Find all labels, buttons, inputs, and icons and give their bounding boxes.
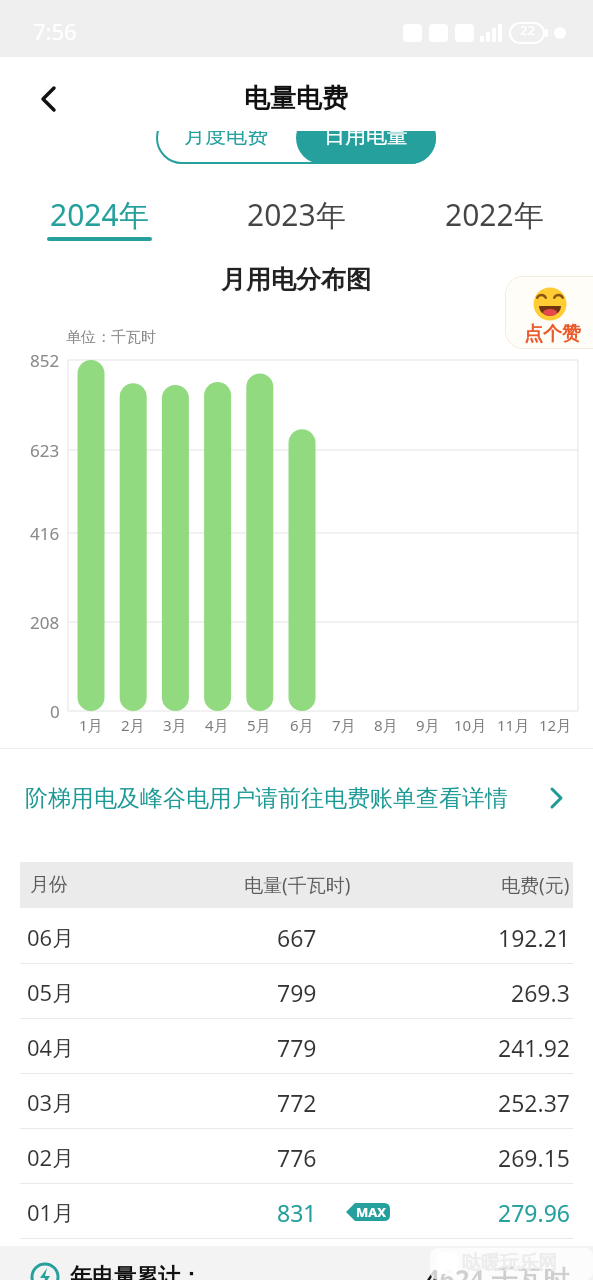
staticText: 单位：千瓦时	[66, 328, 156, 347]
staticText: 8月	[374, 715, 398, 735]
staticText: 06月	[27, 922, 75, 950]
staticText: 831	[277, 1197, 317, 1225]
staticText: 279.96	[498, 1197, 570, 1225]
staticText: 7:56	[33, 16, 77, 44]
staticText: 9月	[416, 715, 440, 735]
staticText: 667	[277, 922, 317, 950]
staticText: 2022年	[445, 194, 544, 235]
staticText: 10月	[454, 715, 487, 735]
button[interactable]	[505, 276, 593, 349]
staticText: 4624 千瓦时	[425, 1261, 570, 1280]
staticText: 1月	[79, 715, 103, 735]
staticText: 252.37	[498, 1087, 570, 1115]
button[interactable]	[20, 963, 573, 1018]
staticText: 月份	[30, 873, 68, 897]
button[interactable]: 月度电费	[156, 131, 296, 150]
staticText: 22	[520, 21, 535, 39]
staticText: 241.92	[498, 1032, 570, 1060]
staticText: 0	[50, 700, 60, 723]
button[interactable]: 日用电量	[296, 131, 436, 150]
staticText: 电费(元)	[501, 872, 570, 898]
staticText: 208	[30, 611, 60, 634]
staticText: 月用电分布图	[221, 264, 371, 295]
staticText: 623	[30, 439, 60, 462]
button[interactable]	[20, 1018, 573, 1073]
staticText: 269.3	[511, 977, 570, 1005]
staticText: 192.21	[498, 922, 570, 950]
staticText: 852	[30, 349, 60, 372]
staticText: 7月	[332, 715, 356, 735]
staticText: 电量(千瓦时)	[244, 872, 351, 898]
staticText: 3月	[163, 715, 187, 735]
staticText: 01月	[27, 1197, 75, 1225]
staticText: 02月	[27, 1142, 75, 1170]
staticText: MAX	[356, 1203, 386, 1221]
button[interactable]	[20, 908, 573, 963]
staticText: 03月	[27, 1087, 75, 1115]
staticText: 2024年	[50, 194, 149, 235]
staticText: 12月	[539, 715, 572, 735]
staticText: 416	[30, 522, 60, 545]
button[interactable]: 2023年	[222, 193, 370, 235]
staticText: 04月	[27, 1032, 75, 1060]
button[interactable]	[0, 762, 593, 832]
button[interactable]: 2024年	[25, 193, 173, 235]
staticText: 269.15	[498, 1142, 570, 1170]
staticText: 05月	[27, 977, 75, 1005]
button[interactable]	[20, 1073, 573, 1128]
button[interactable]	[20, 1128, 573, 1183]
staticText: 4月	[205, 715, 229, 735]
staticText: 2月	[121, 715, 145, 735]
staticText: 哒暖玩乐网	[462, 1251, 557, 1275]
staticText: 2023年	[247, 194, 346, 235]
staticText: 11月	[497, 715, 530, 735]
staticText: 799	[277, 977, 317, 1005]
staticText: 776	[277, 1142, 317, 1170]
staticText: 772	[277, 1087, 317, 1115]
staticText: 779	[277, 1032, 317, 1060]
staticText: 日用电量	[324, 131, 408, 149]
staticText: 点个赞	[524, 322, 581, 346]
staticText: 阶梯用电及峰谷电用户请前往电费账单查看详情	[25, 784, 508, 812]
staticText: 月度电费	[184, 131, 268, 149]
staticText: 5月	[247, 715, 271, 735]
staticText: 6月	[290, 715, 314, 735]
button[interactable]	[26, 76, 72, 122]
staticText: 电量电费	[244, 82, 348, 115]
button[interactable]	[20, 1183, 573, 1238]
button[interactable]: 2022年	[420, 193, 568, 235]
staticText: 年电量累计：	[70, 1263, 202, 1280]
